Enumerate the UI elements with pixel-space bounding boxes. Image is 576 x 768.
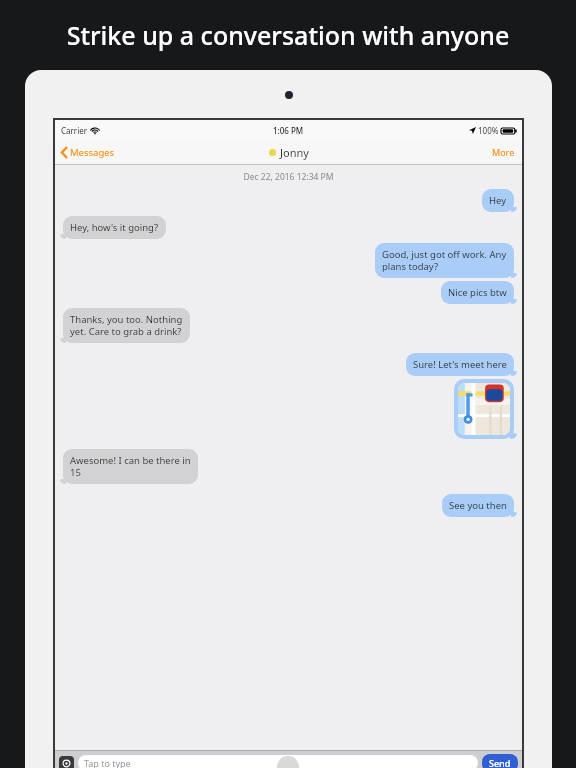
staticText: More xyxy=(492,146,515,158)
button[interactable]: Camera xyxy=(59,756,74,768)
staticText: 1:06 PM xyxy=(273,125,304,136)
staticText: Good, just got off work. Any plans today… xyxy=(382,248,507,273)
staticText: Send xyxy=(489,757,511,768)
button[interactable]: Messages xyxy=(55,143,123,162)
staticText: Thanks, you too. Nothing yet. Care to gr… xyxy=(70,313,183,338)
staticText: Hey, how's it going? xyxy=(70,221,159,234)
staticText: Nice pics btw xyxy=(448,286,507,299)
staticText: 100% xyxy=(478,125,499,136)
staticText: Awesome! I can be there in 15 xyxy=(70,454,191,479)
staticText: Jonny xyxy=(280,145,309,160)
staticText: Hey xyxy=(489,194,507,207)
staticText: Strike up a conversation with anyone xyxy=(0,18,576,52)
staticText: See you then xyxy=(449,499,507,512)
staticText: Messages xyxy=(70,146,115,159)
staticText: Tap to type xyxy=(84,757,131,768)
staticText: Carrier xyxy=(61,125,88,136)
staticText: Dec 22, 2016 12:34 PM xyxy=(55,171,522,183)
button[interactable]: More xyxy=(485,143,522,161)
staticText: Sure! Let's meet here xyxy=(413,358,507,371)
button[interactable]: Tap to type xyxy=(78,755,478,768)
button[interactable]: Send xyxy=(482,754,518,768)
button[interactable]: Jonny xyxy=(269,145,309,160)
